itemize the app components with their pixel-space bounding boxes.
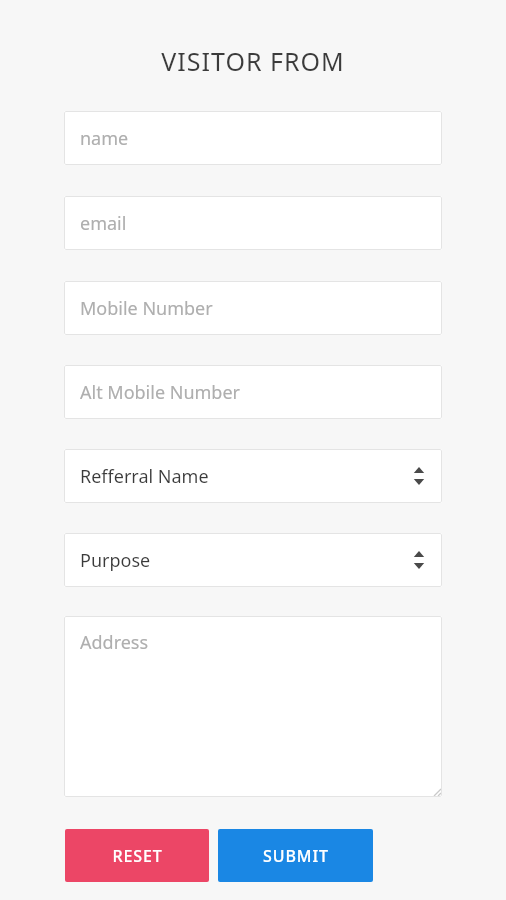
button[interactable]: Purpose bbox=[64, 533, 442, 587]
staticText: VISITOR FROM bbox=[161, 44, 345, 78]
button[interactable]: email bbox=[64, 196, 442, 250]
staticText: Purpose bbox=[80, 548, 151, 573]
staticText: Mobile Number bbox=[80, 296, 213, 321]
other: Open dropdown bbox=[412, 549, 426, 571]
staticText: RESET bbox=[112, 845, 163, 867]
staticText: Alt Mobile Number bbox=[80, 380, 241, 405]
button[interactable]: SUBMIT bbox=[218, 829, 373, 882]
staticText: name bbox=[80, 126, 129, 151]
button[interactable]: name bbox=[64, 111, 442, 165]
button[interactable]: RESET bbox=[65, 829, 209, 882]
button[interactable]: Refferral Name bbox=[64, 449, 442, 503]
button[interactable]: Alt Mobile Number bbox=[64, 365, 442, 419]
staticText: Address bbox=[80, 630, 149, 655]
staticText: Refferral Name bbox=[80, 464, 209, 489]
other: Open dropdown bbox=[412, 465, 426, 487]
staticText: SUBMIT bbox=[263, 845, 329, 867]
button[interactable]: Mobile Number bbox=[64, 281, 442, 335]
button[interactable]: Address bbox=[64, 616, 442, 797]
staticText: email bbox=[80, 211, 127, 236]
